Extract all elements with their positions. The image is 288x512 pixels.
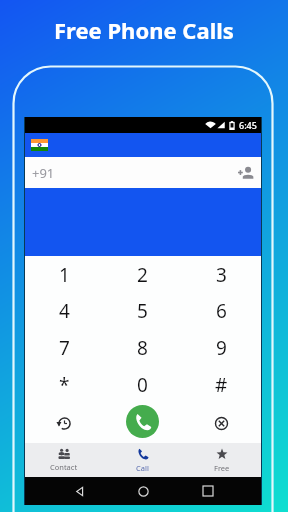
button[interactable]: Home — [132, 480, 154, 502]
button[interactable]: 6 — [182, 293, 261, 329]
button[interactable]: 2 — [103, 257, 182, 293]
staticText: 7 — [59, 335, 70, 361]
button[interactable]: +91 — [25, 157, 261, 188]
staticText: 6 — [216, 298, 227, 324]
button[interactable]: * — [25, 366, 103, 403]
button[interactable]: Recents — [197, 480, 219, 502]
staticText: Free — [214, 463, 230, 473]
staticText: Call — [136, 463, 149, 473]
staticText: 6:45 — [239, 119, 257, 131]
staticText: Contact — [50, 462, 78, 472]
staticText: 8 — [137, 335, 148, 361]
staticText: 2 — [137, 262, 148, 288]
staticText: +91 — [32, 164, 55, 182]
staticText: 9 — [216, 335, 227, 361]
staticText: 5 — [137, 298, 148, 324]
button[interactable]: 4 — [25, 293, 103, 329]
staticText: 1 — [59, 262, 70, 288]
button[interactable]: Contact — [25, 443, 103, 477]
staticText: 3 — [216, 262, 227, 288]
button[interactable]: Call — [103, 403, 182, 444]
button[interactable]: 0 — [103, 366, 182, 403]
button[interactable]: 8 — [103, 329, 182, 366]
staticText: * — [59, 372, 70, 398]
button[interactable]: Add contact — [237, 164, 255, 182]
button[interactable]: Clear — [182, 403, 261, 444]
staticText: 0 — [137, 372, 148, 398]
button[interactable]: # — [182, 366, 261, 403]
button[interactable]: Call history — [25, 403, 103, 444]
button[interactable]: Back — [68, 480, 90, 502]
staticText: # — [215, 372, 228, 398]
button[interactable]: 7 — [25, 329, 103, 366]
staticText: Free Phone Calls — [54, 15, 234, 45]
button[interactable]: 1 — [25, 257, 103, 293]
staticText: 4 — [59, 298, 70, 324]
button[interactable]: 3 — [182, 257, 261, 293]
button[interactable]: 5 — [103, 293, 182, 329]
button[interactable]: Call — [103, 443, 182, 477]
button[interactable]: 9 — [182, 329, 261, 366]
button[interactable]: Free — [182, 443, 261, 477]
